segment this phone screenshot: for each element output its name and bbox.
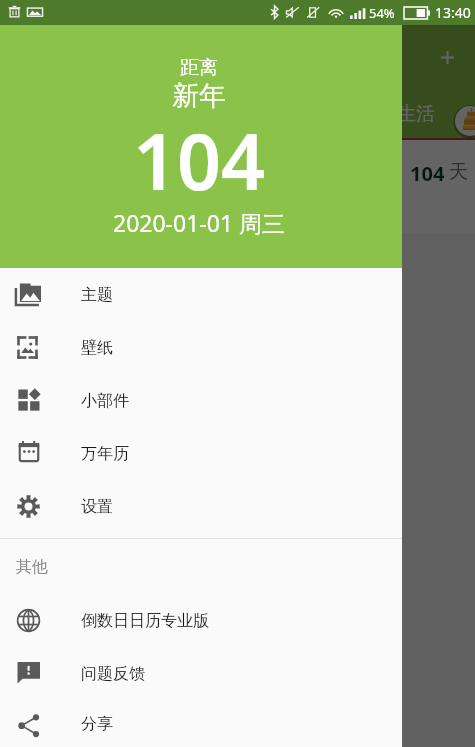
staticText: 主题 [81,285,113,305]
button[interactable]: Add [441,51,454,64]
staticText: 104 [410,160,445,187]
staticText: 分享 [81,714,113,734]
staticText: 问题反馈 [81,664,145,684]
staticText: 2020-01-01 周三 [113,207,286,238]
staticText: 13:40 [435,3,471,22]
button[interactable]: 壁纸 [0,321,402,374]
staticText: 54% [369,4,395,22]
button[interactable]: 生活 [397,102,435,126]
staticText: 倒数日日历专业版 [81,611,209,631]
button[interactable]: 主题 [0,268,402,321]
button[interactable]: 问题反馈 [0,647,402,700]
button[interactable]: 设置 [0,480,402,533]
button[interactable]: 万年历 [0,427,402,480]
staticText: 万年历 [81,444,129,464]
staticText: 距离 [180,56,218,80]
button[interactable]: 倒数日日历专业版 [0,594,402,647]
button[interactable]: Add countdown [452,103,475,139]
button[interactable]: 分享 [0,700,402,747]
staticText: 天 [449,160,468,184]
staticText: 新年 [172,79,226,113]
staticText: 壁纸 [81,338,113,358]
staticText: 设置 [81,497,113,517]
staticText: 104 [133,108,266,213]
staticText: 小部件 [81,391,129,411]
button[interactable]: 小部件 [0,374,402,427]
staticText: 其他 [16,557,48,577]
